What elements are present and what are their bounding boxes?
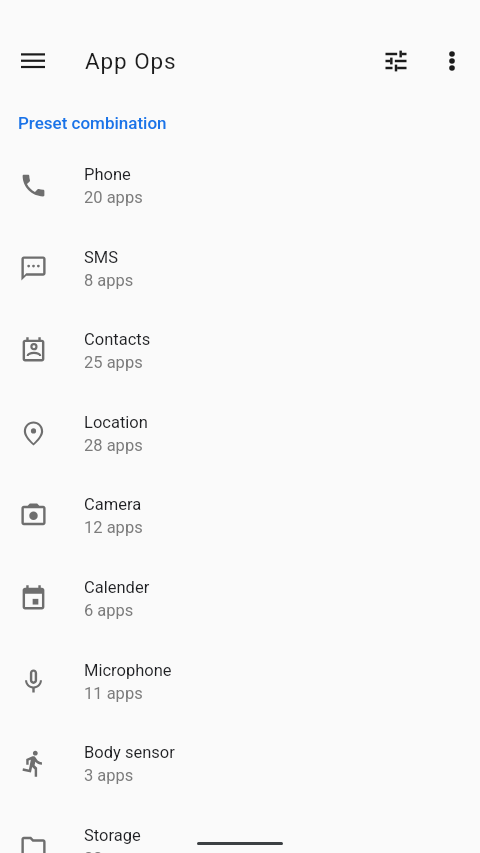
button[interactable]: Calender [0,557,480,640]
button[interactable]: Microphone [0,640,480,723]
staticText: Location [84,413,148,432]
button[interactable]: Preset combination [0,88,480,144]
staticText: App Ops [85,48,177,74]
staticText: 6 apps [84,601,134,620]
staticText: 20 apps [84,188,143,207]
button[interactable]: More options [428,36,476,84]
staticText: 8 apps [84,271,134,290]
button[interactable]: Phone [0,144,480,227]
staticText: Calender [84,578,150,597]
staticText: Contacts [84,330,151,349]
button[interactable]: SMS [0,227,480,310]
staticText: Microphone [84,661,172,680]
button[interactable]: Camera [0,474,480,557]
staticText: Body sensor [84,743,175,762]
button[interactable]: Filter [372,36,420,84]
button[interactable]: Open navigation drawer [9,36,57,84]
staticText: 3 apps [84,766,134,785]
staticText: 11 apps [84,684,143,703]
staticText: 12 apps [84,518,143,537]
staticText: 28 apps [84,436,143,455]
staticText: Preset combination [18,113,167,133]
staticText: Storage [84,826,141,845]
button[interactable]: Body sensor [0,722,480,805]
staticText: SMS [84,248,118,267]
staticText: 23 apps [84,849,143,853]
button[interactable]: Location [0,392,480,475]
button[interactable]: Contacts [0,309,480,392]
staticText: Phone [84,165,131,184]
button[interactable]: Storage [0,805,480,853]
staticText: Camera [84,495,142,514]
staticText: 25 apps [84,353,143,372]
